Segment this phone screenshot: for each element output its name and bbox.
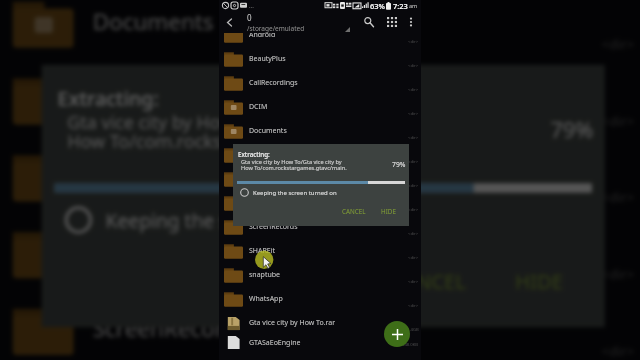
staticText: CANCEL — [342, 207, 366, 216]
button[interactable]: Grid view — [382, 12, 402, 32]
staticText: <dir> — [602, 36, 637, 55]
button[interactable]: CANCEL — [374, 257, 483, 305]
button[interactable]: DCIM — [219, 95, 421, 119]
staticText: SHAREit — [249, 246, 276, 256]
staticText: <dir> — [408, 135, 419, 141]
staticText: Keeping the screen turned on — [106, 209, 374, 234]
staticText: <dir> — [408, 87, 419, 93]
staticText: <dir> — [408, 39, 419, 45]
staticText: ScreenRecords — [249, 222, 298, 232]
staticText: <dir> — [408, 159, 419, 165]
staticText: 1.4GB — [407, 327, 419, 333]
staticText: /storage/emulated — [247, 24, 305, 33]
button[interactable]: More options — [403, 14, 419, 30]
staticText: <dir> — [408, 279, 419, 285]
staticText: Extracting: — [238, 150, 270, 158]
button[interactable]: Keeping the screen turned on — [64, 206, 374, 234]
staticText: <dir> — [408, 255, 419, 261]
staticText: Keeping the screen turned on — [253, 189, 337, 197]
button[interactable]: Download — [0, 62, 640, 138]
button[interactable]: SHAREit — [219, 239, 421, 263]
staticText: 79% — [550, 116, 595, 145]
staticText: <dir> — [408, 207, 419, 213]
staticText: ScreenRecords — [93, 314, 250, 346]
button[interactable]: BeautyPlus — [219, 47, 421, 71]
staticText: ... — [249, 2, 254, 10]
staticText: am — [409, 2, 418, 9]
button[interactable]: Music — [0, 215, 640, 292]
staticText: 79% — [392, 160, 406, 169]
button[interactable]: CANCEL — [337, 204, 371, 219]
staticText: Android — [249, 33, 276, 40]
staticText: CANCEL — [390, 266, 467, 295]
staticText: CallRecordings — [249, 78, 298, 88]
button[interactable]: ScreenRecords — [219, 215, 421, 239]
button[interactable]: Movies — [219, 167, 421, 191]
staticText: Documents — [93, 7, 214, 39]
staticText: <dir> — [602, 266, 637, 286]
staticText: Movies — [93, 161, 170, 193]
button[interactable]: Music — [219, 191, 421, 215]
button[interactable]: GTASaEoEngine — [219, 335, 421, 350]
staticText: Download — [93, 84, 202, 116]
staticText: BeautyPlus — [249, 54, 286, 64]
button[interactable]: Download — [219, 143, 421, 167]
button[interactable]: Back — [222, 15, 237, 30]
button[interactable]: ScreenRecords — [0, 292, 640, 360]
button[interactable]: Keeping the screen turned on — [240, 188, 337, 197]
staticText: snaptube — [249, 270, 281, 280]
staticText: <dir> — [408, 111, 419, 117]
staticText: <dir> — [602, 113, 637, 132]
staticText: <dir> — [602, 190, 637, 209]
staticText: 0 — [247, 12, 252, 23]
button[interactable]: Documents — [0, 0, 640, 62]
button[interactable]: CallRecordings — [219, 71, 421, 95]
staticText: <dir> — [602, 343, 637, 360]
staticText: WhatsApp — [249, 294, 283, 304]
staticText: Documents — [249, 126, 287, 136]
button[interactable]: Gta vice city by How To.rar — [219, 311, 421, 335]
button[interactable]: WhatsApp — [219, 287, 421, 311]
button[interactable]: Add new — [384, 321, 410, 347]
staticText: 348.0KB — [402, 342, 419, 348]
button[interactable]: Documents — [219, 119, 421, 143]
staticText: DCIM — [249, 102, 268, 112]
staticText: Gta vice city by How To.rar — [249, 318, 336, 328]
staticText: <dir> — [408, 303, 419, 309]
staticText: Extracting: — [58, 84, 160, 110]
staticText: HIDE — [381, 207, 396, 216]
staticText: <dir> — [408, 63, 419, 69]
staticText: Download — [249, 150, 283, 160]
staticText: <dir> — [408, 231, 419, 237]
button[interactable]: Android — [219, 33, 421, 47]
staticText: <dir> — [408, 183, 419, 189]
staticText: Movies — [249, 174, 273, 184]
staticText: 7:23 — [393, 1, 408, 11]
staticText: 63% — [370, 1, 385, 11]
staticText: Gta vice city by How To/Gta vice city by… — [241, 158, 347, 172]
button[interactable]: snaptube — [219, 263, 421, 287]
staticText: Gta vice city by How To/Gta vice city by… — [67, 110, 406, 154]
button[interactable]: Search — [359, 12, 379, 32]
button[interactable]: HIDE — [499, 257, 579, 305]
button[interactable]: Movies — [0, 138, 640, 215]
staticText: HIDE — [515, 266, 563, 295]
button[interactable]: HIDE — [376, 204, 401, 219]
staticText: GTASaEoEngine — [249, 338, 301, 348]
